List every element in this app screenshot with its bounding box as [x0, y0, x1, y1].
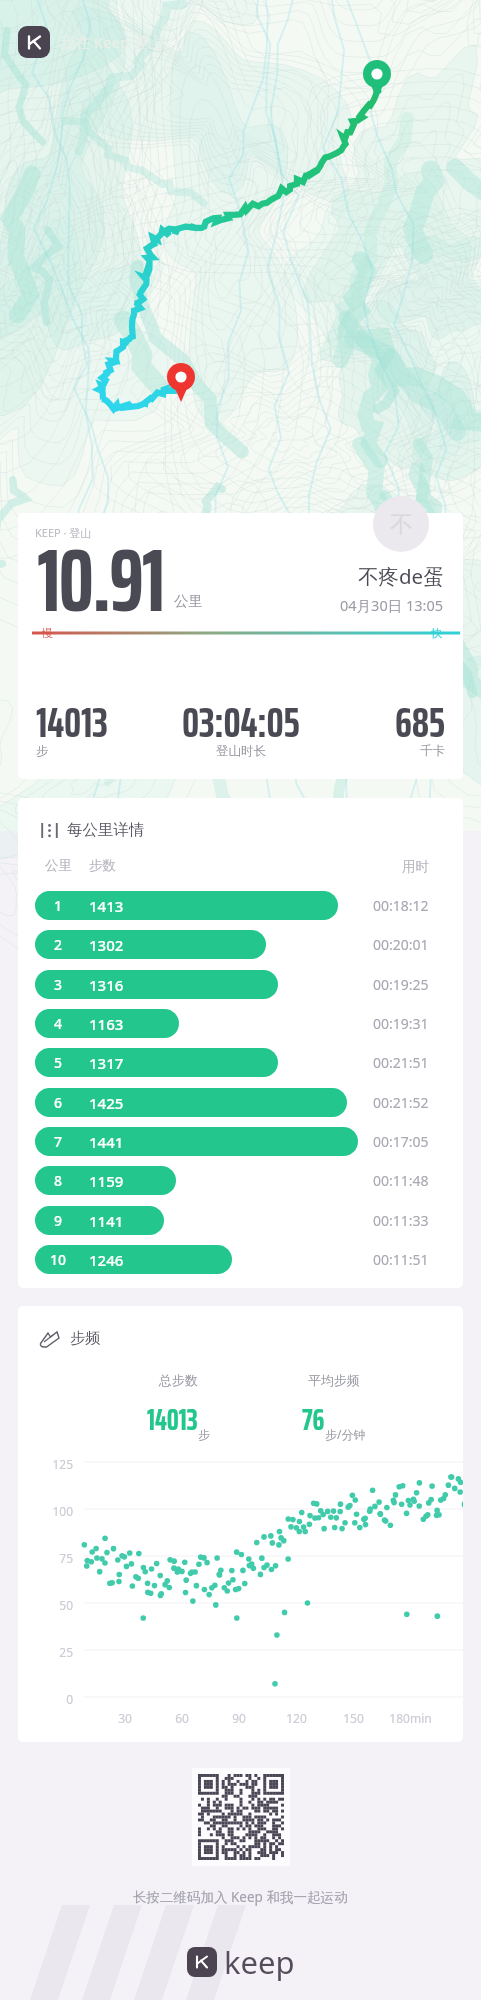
staticText: 快	[431, 626, 442, 640]
staticText: 1302	[89, 935, 124, 955]
staticText: 120	[286, 1710, 307, 1726]
staticText: 90	[232, 1710, 246, 1726]
staticText: 1	[54, 896, 63, 915]
button[interactable]: 7	[35, 1127, 358, 1156]
staticText: 平均步频	[308, 1372, 360, 1388]
staticText: 180min	[389, 1710, 432, 1726]
button[interactable]: 1	[35, 891, 338, 920]
staticText: 1413	[89, 896, 124, 916]
staticText: 步	[198, 1427, 210, 1442]
button[interactable]: 步频	[39, 1329, 100, 1348]
staticText: 1441	[89, 1132, 124, 1152]
staticText: 登山时长	[216, 743, 266, 759]
staticText: 3	[54, 975, 63, 994]
staticText: 60	[175, 1710, 189, 1726]
staticText: 00:21:52	[373, 1093, 429, 1112]
staticText: 7	[54, 1132, 63, 1151]
staticText: 公里	[174, 592, 203, 610]
staticText: 00:17:05	[373, 1132, 429, 1151]
staticText: 不	[390, 510, 413, 539]
button[interactable]: 3	[35, 970, 278, 999]
button[interactable]: 9	[35, 1206, 164, 1235]
staticText: 685	[395, 688, 445, 748]
button[interactable]: 5	[35, 1048, 278, 1077]
button[interactable]: 10	[35, 1245, 232, 1274]
staticText: 4	[54, 1014, 63, 1033]
staticText: 25	[59, 1644, 73, 1660]
staticText: 76	[302, 1396, 325, 1443]
staticText: 总步数	[159, 1372, 198, 1388]
staticText: 步/分钟	[325, 1426, 366, 1442]
staticText: 0	[66, 1691, 73, 1707]
staticText: 9	[54, 1211, 63, 1230]
button[interactable]: 6	[35, 1088, 347, 1117]
other: Keep logo	[18, 26, 50, 58]
staticText: 00:20:01	[373, 935, 429, 954]
staticText: 1163	[89, 1014, 124, 1034]
staticText: 14013	[36, 688, 108, 748]
staticText: 150	[343, 1710, 364, 1726]
staticText: 每公里详情	[67, 820, 145, 840]
staticText: 步数	[89, 857, 116, 874]
staticText: 我在 Keep 登山	[60, 32, 164, 52]
staticText: 1316	[89, 975, 124, 995]
staticText: 10.91	[37, 513, 164, 650]
staticText: 100	[52, 1503, 73, 1519]
button[interactable]: 8	[35, 1166, 176, 1195]
staticText: 50	[59, 1597, 73, 1613]
button[interactable]: 不	[373, 496, 429, 552]
staticText: 6	[54, 1093, 63, 1112]
staticText: keep	[224, 1941, 295, 1983]
staticText: 长按二维码加入 Keep 和我一起运动	[133, 1888, 348, 1906]
staticText: 04月30日 13:05	[340, 595, 444, 615]
staticText: 00:18:12	[373, 896, 429, 915]
staticText: 慢	[42, 626, 53, 640]
staticText: 14013	[147, 1396, 198, 1443]
staticText: 1141	[89, 1211, 124, 1231]
staticText: 8	[54, 1171, 63, 1190]
staticText: 用时	[402, 858, 429, 875]
staticText: 00:11:48	[373, 1171, 429, 1190]
staticText: KEEP · 登山	[35, 525, 92, 540]
button[interactable]: 4	[35, 1009, 179, 1038]
button[interactable]: 2	[35, 930, 266, 959]
staticText: 千卡	[420, 743, 445, 759]
staticText: 00:19:25	[373, 975, 429, 994]
staticText: 00:21:51	[373, 1053, 429, 1072]
staticText: 1246	[89, 1250, 124, 1270]
staticText: 2	[54, 935, 63, 954]
staticText: 步频	[70, 1329, 100, 1348]
staticText: 1317	[89, 1053, 124, 1073]
staticText: 1425	[89, 1093, 124, 1113]
staticText: 5	[54, 1053, 63, 1072]
staticText: 10	[50, 1250, 67, 1269]
staticText: 1159	[89, 1171, 124, 1191]
staticText: 03:04:05	[182, 688, 300, 748]
staticText: 00:11:51	[373, 1250, 429, 1269]
staticText: 125	[52, 1456, 73, 1472]
staticText: 30	[118, 1710, 132, 1726]
staticText: 步	[36, 743, 49, 759]
staticText: 不疼de蛋	[358, 562, 444, 590]
staticText: 公里	[45, 857, 72, 874]
staticText: 75	[59, 1550, 73, 1566]
button[interactable]: 每公里详情	[41, 820, 145, 840]
staticText: 00:11:33	[373, 1211, 429, 1230]
staticText: 00:19:31	[373, 1014, 429, 1033]
